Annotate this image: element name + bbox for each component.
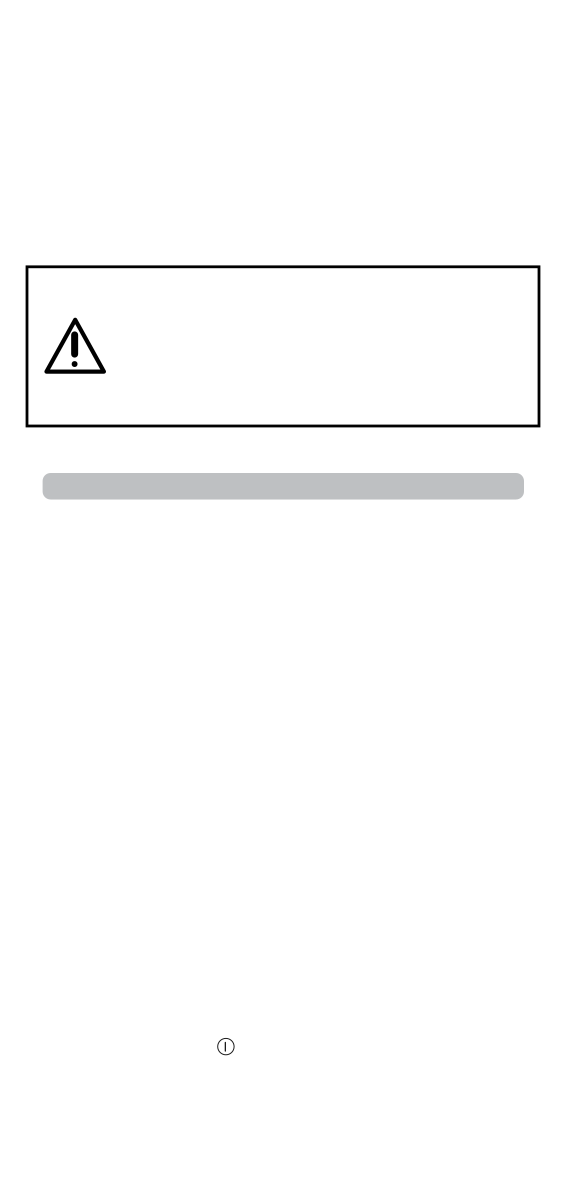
button[interactable]: Info xyxy=(218,1038,234,1055)
button[interactable]: Continue xyxy=(43,473,524,499)
